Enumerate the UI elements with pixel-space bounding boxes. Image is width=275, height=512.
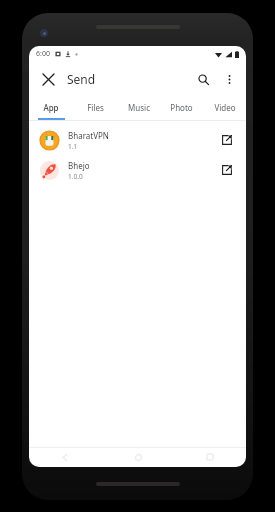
button[interactable]: Bhejo xyxy=(29,155,246,185)
button[interactable]: BharatVPN xyxy=(29,125,246,155)
staticText: Send xyxy=(67,71,96,87)
button[interactable]: Close xyxy=(34,65,62,93)
button[interactable]: Photo xyxy=(160,96,203,118)
button[interactable]: Open Bhejo xyxy=(217,160,237,180)
button[interactable]: Files xyxy=(73,96,117,118)
button[interactable]: Music xyxy=(117,96,160,118)
button[interactable]: Recent apps xyxy=(174,447,246,467)
staticText: Video xyxy=(214,102,236,113)
staticText: BharatVPN xyxy=(68,130,109,141)
button[interactable]: App xyxy=(29,96,73,118)
button[interactable]: Home xyxy=(102,447,174,467)
staticText: 1.0.0 xyxy=(68,172,83,181)
staticText: 1.1 xyxy=(68,142,78,151)
staticText: 6:00 xyxy=(36,49,50,59)
button[interactable]: Search xyxy=(190,66,216,92)
staticText: Music xyxy=(128,102,150,113)
button[interactable]: Back xyxy=(29,447,102,467)
button[interactable]: More options xyxy=(216,66,242,92)
button[interactable]: Video xyxy=(203,96,246,118)
staticText: Files xyxy=(87,102,104,113)
staticText: Photo xyxy=(170,102,193,113)
button[interactable]: Open BharatVPN xyxy=(217,130,237,150)
staticText: Bhejo xyxy=(68,160,90,171)
staticText: App xyxy=(43,102,59,113)
